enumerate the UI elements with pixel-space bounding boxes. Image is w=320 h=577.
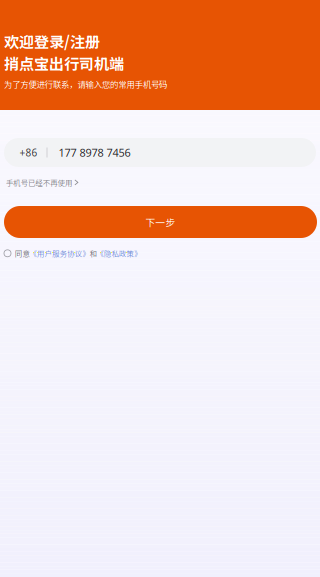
staticText: 177 8978 7456 bbox=[58, 145, 130, 160]
staticText: 为了方便进行联系，请输入您的常用手机号码 bbox=[4, 78, 167, 90]
staticText: 下一步 bbox=[145, 215, 175, 229]
staticText: 捎点宝出行司机端 bbox=[4, 52, 124, 74]
staticText: 《隐私政策》 bbox=[96, 248, 141, 259]
staticText: 《用户服务协议》 bbox=[29, 248, 89, 259]
staticText: 同意 bbox=[15, 248, 29, 259]
staticText: 和 bbox=[89, 248, 96, 259]
button[interactable]: 同意 bbox=[0, 0, 141, 259]
staticText: +86 bbox=[19, 146, 37, 159]
staticText: 手机号已经不再使用 bbox=[6, 177, 72, 188]
button[interactable]: 下一步 bbox=[0, 0, 317, 238]
button[interactable]: 手机号已经不再使用 bbox=[0, 0, 78, 188]
staticText: 欢迎登录/注册 bbox=[4, 30, 100, 52]
